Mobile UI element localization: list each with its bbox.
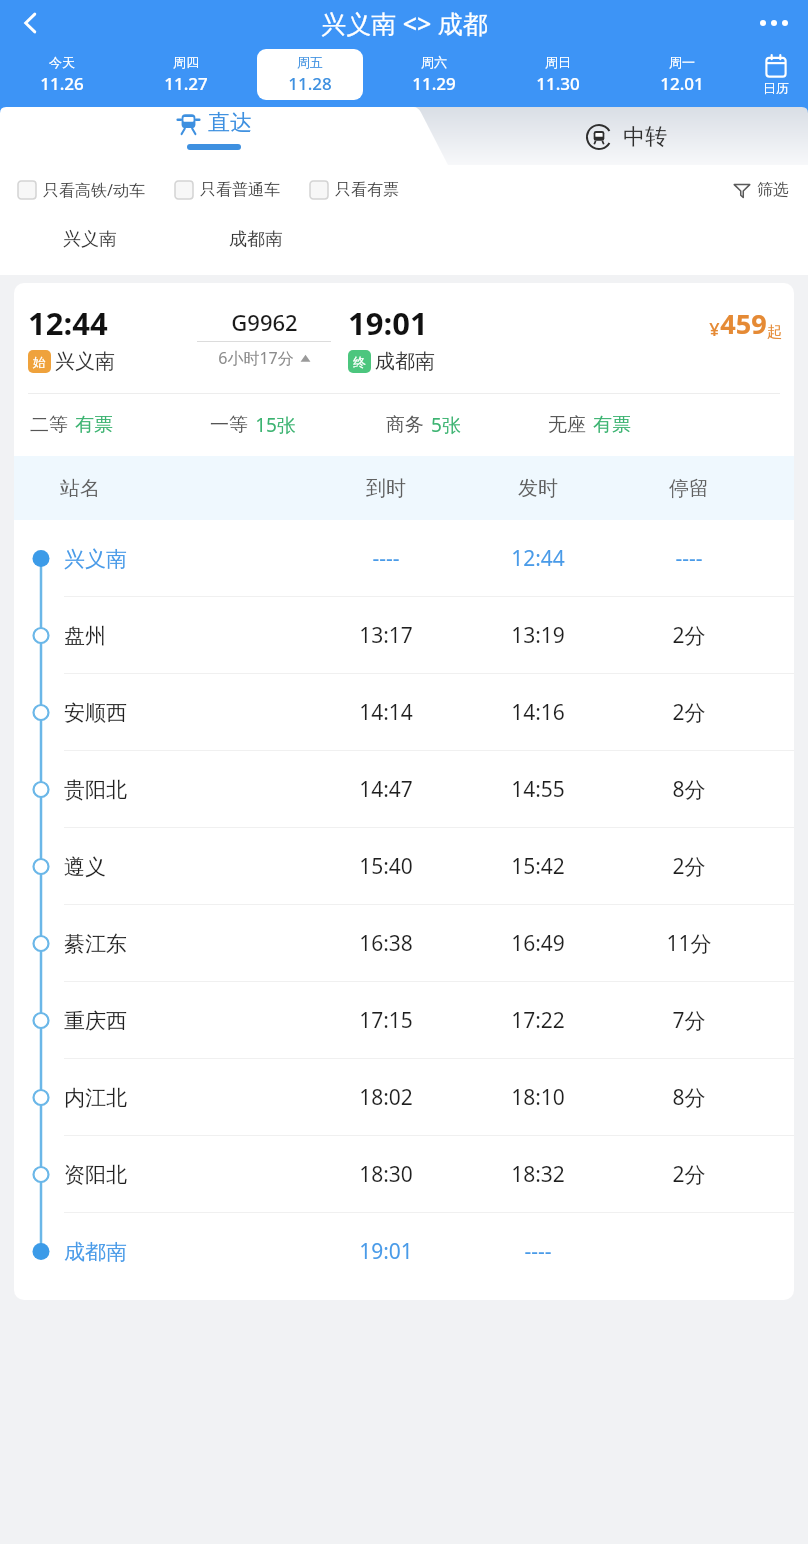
staticText: 发时 [518, 476, 558, 501]
button[interactable]: 内江北 [14, 1059, 794, 1136]
staticText: 周五 [297, 54, 323, 70]
staticText: 6小时17分 [218, 347, 294, 369]
staticText: 一等 [210, 413, 248, 437]
staticText: 14:55 [511, 775, 565, 804]
staticText: 兴义南 [55, 349, 115, 374]
staticText: 2分 [672, 852, 706, 881]
staticText: 459 [720, 305, 767, 342]
button[interactable] [0, 107, 448, 165]
staticText: 11.26 [40, 72, 84, 95]
button[interactable]: 遵义 [14, 828, 794, 905]
staticText: 15:40 [359, 852, 413, 881]
button[interactable]: 周四 [133, 49, 239, 100]
staticText: ---- [372, 544, 400, 573]
staticText: 资阳北 [64, 1162, 127, 1188]
staticText: 周六 [421, 54, 447, 70]
button[interactable]: 周日 [505, 49, 611, 100]
button[interactable]: 周五 [257, 49, 363, 100]
staticText: 15张 [255, 412, 296, 438]
staticText: 2分 [672, 698, 706, 727]
staticText: 周四 [173, 54, 199, 70]
button[interactable]: 只看有票 [310, 173, 399, 207]
staticText: 兴义南 [63, 228, 117, 251]
staticText: ¥ [709, 317, 720, 342]
staticText: 今天 [49, 54, 75, 70]
button[interactable]: 成都南 [14, 1213, 794, 1290]
staticText: 綦江东 [64, 931, 127, 957]
button[interactable]: 只看高铁/动车 [18, 172, 145, 208]
staticText: 无座 [548, 413, 586, 437]
staticText: 16:49 [511, 929, 565, 958]
staticText: 8分 [672, 1083, 706, 1112]
staticText: 18:02 [359, 1083, 413, 1112]
staticText: 17:22 [511, 1006, 565, 1035]
staticText: 18:10 [511, 1083, 565, 1112]
staticText: 14:16 [511, 698, 565, 727]
staticText: 16:38 [359, 929, 413, 958]
staticText: 只看有票 [335, 180, 399, 200]
staticText: 内江北 [64, 1085, 127, 1111]
button[interactable]: 綦江东 [14, 905, 794, 982]
staticText: 11.30 [536, 72, 580, 95]
staticText: 19:01 [359, 1237, 413, 1266]
staticText: 商务 [386, 413, 424, 437]
staticText: 兴义南 [64, 546, 127, 572]
staticText: 有票 [593, 413, 631, 437]
staticText: 只看高铁/动车 [43, 179, 145, 201]
staticText: 重庆西 [64, 1008, 127, 1034]
staticText: 7分 [672, 1006, 706, 1035]
staticText: 中转 [623, 123, 667, 151]
staticText: 2分 [672, 621, 706, 650]
staticText: 安顺西 [64, 700, 127, 726]
staticText: 停留 [669, 476, 709, 501]
staticText: 筛选 [757, 180, 789, 200]
staticText: 11.29 [412, 72, 456, 95]
staticText: 贵阳北 [64, 777, 127, 803]
button[interactable]: 周六 [381, 49, 487, 100]
button[interactable]: 兴义南 [14, 520, 794, 597]
staticText: 盘州 [64, 623, 106, 649]
button[interactable]: 重庆西 [14, 982, 794, 1059]
staticText: 15:42 [511, 852, 565, 881]
button[interactable]: More options [752, 1, 796, 45]
staticText: 成都南 [64, 1239, 127, 1265]
staticText: 起 [767, 323, 782, 342]
staticText: 日历 [763, 80, 789, 96]
staticText: 周一 [669, 54, 695, 70]
button[interactable]: Back [8, 1, 52, 45]
button[interactable]: 周一 [629, 49, 735, 100]
staticText: 19:01 [348, 302, 428, 344]
button[interactable]: Calendar [744, 46, 808, 103]
staticText: 12:44 [28, 302, 108, 344]
staticText: 11.28 [288, 72, 332, 95]
button[interactable]: 资阳北 [14, 1136, 794, 1213]
staticText: 2分 [672, 1160, 706, 1189]
staticText: 终 [353, 354, 366, 370]
staticText: 遵义 [64, 854, 106, 880]
staticText: ---- [675, 544, 703, 573]
button[interactable]: 盘州 [14, 597, 794, 674]
staticText: 18:30 [359, 1160, 413, 1189]
button[interactable]: 贵阳北 [14, 751, 794, 828]
staticText: 成都南 [375, 349, 435, 374]
staticText: 兴义南 <> 成都 [321, 6, 488, 40]
staticText: 有票 [75, 413, 113, 437]
button[interactable]: 成都南 [182, 215, 330, 263]
button[interactable]: 筛选 [730, 173, 792, 207]
staticText: 13:19 [511, 621, 565, 650]
button[interactable]: 兴义南 [16, 215, 164, 263]
staticText: 成都南 [229, 228, 283, 251]
staticText: 始 [33, 354, 46, 370]
button[interactable]: 只看普通车 [175, 173, 280, 207]
staticText: 17:15 [359, 1006, 413, 1035]
button[interactable]: 安顺西 [14, 674, 794, 751]
button[interactable]: 今天 [9, 49, 115, 100]
staticText: 12.01 [660, 72, 704, 95]
staticText: 到时 [366, 476, 406, 501]
staticText: 13:17 [359, 621, 413, 650]
staticText: 站名 [60, 476, 100, 501]
button[interactable] [0, 107, 808, 165]
staticText: ---- [524, 1237, 552, 1266]
staticText: 11分 [666, 929, 712, 958]
staticText: 周日 [545, 54, 571, 70]
